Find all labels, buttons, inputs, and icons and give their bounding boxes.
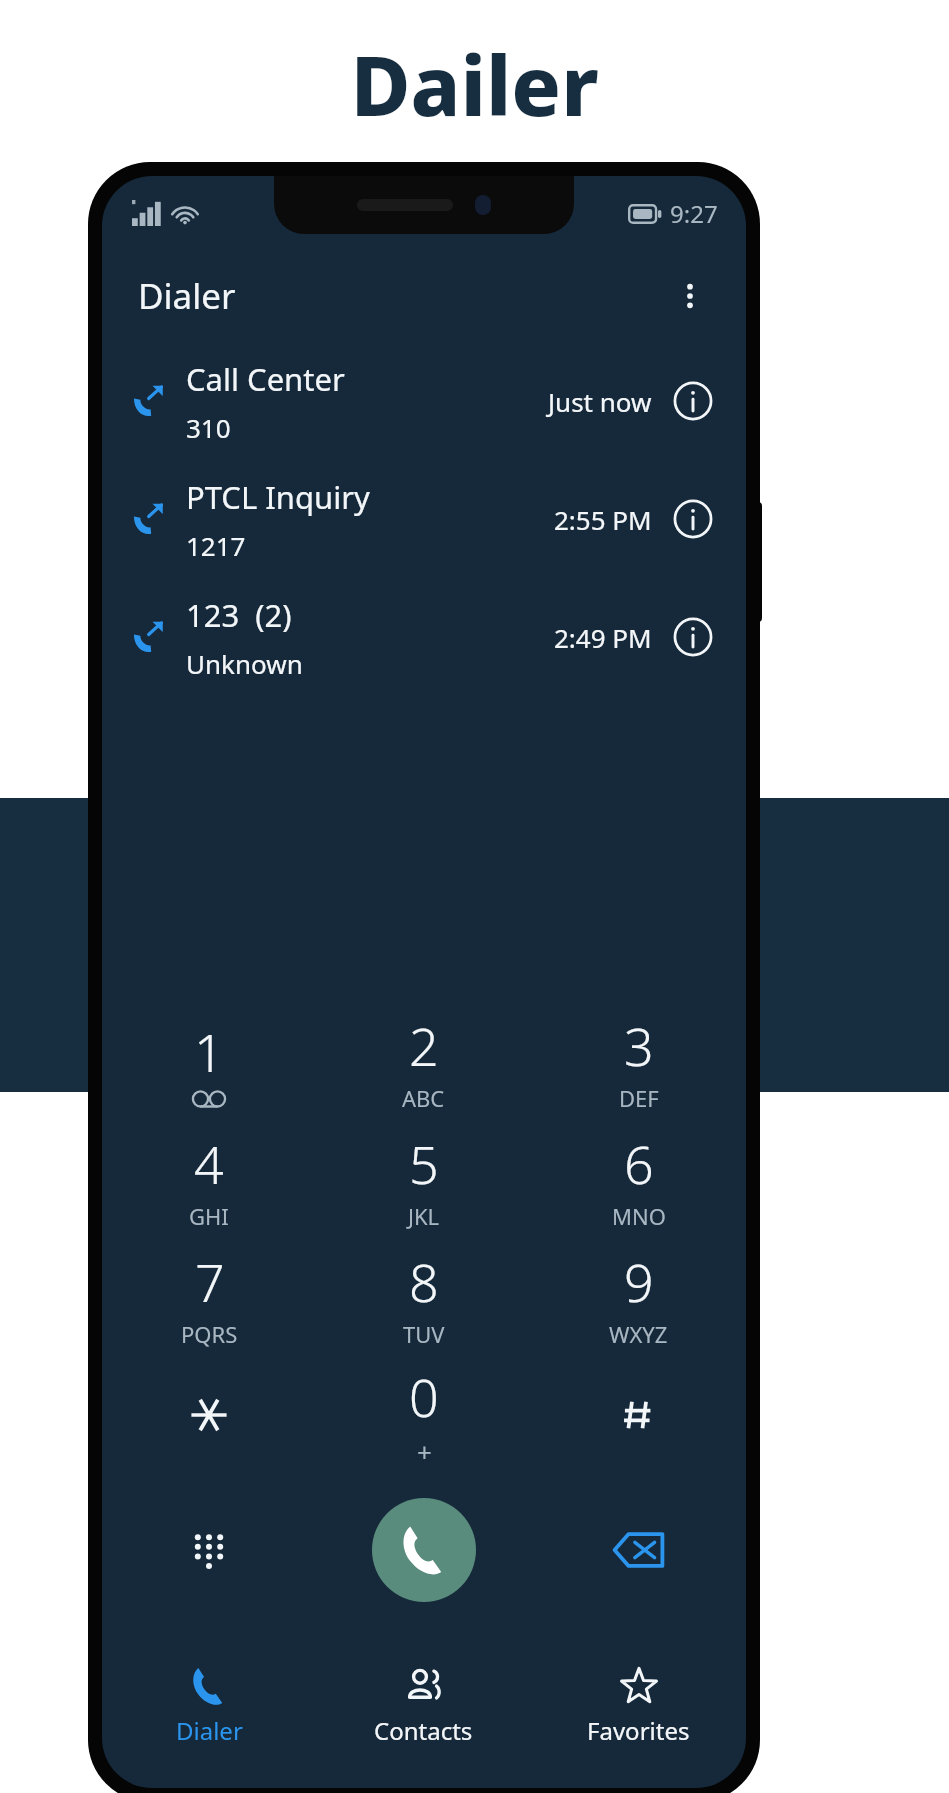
staticText: 8	[409, 1246, 439, 1317]
staticText: 123 (2)	[186, 594, 292, 636]
staticText: 310	[186, 410, 231, 445]
staticText: Just now	[548, 384, 652, 419]
staticText: 0	[409, 1361, 439, 1432]
staticText: 2	[409, 1010, 439, 1081]
button[interactable]: 123 (2)	[102, 578, 746, 696]
button[interactable]: Call details	[670, 496, 716, 542]
staticText: 6	[624, 1128, 654, 1199]
staticText: DEF	[619, 1083, 659, 1113]
staticText: 5	[409, 1128, 439, 1199]
staticText: 7	[195, 1246, 225, 1317]
button[interactable]: 0	[316, 1356, 531, 1474]
staticText: 9:27	[670, 197, 718, 230]
button[interactable]: 4	[102, 1120, 316, 1238]
button[interactable]: Backspace	[531, 1490, 746, 1610]
staticText: Dialer	[138, 272, 236, 320]
button[interactable]: Keypad	[102, 1490, 316, 1610]
staticText: 1217	[186, 528, 246, 563]
button[interactable]: Contacts	[316, 1650, 531, 1762]
button[interactable]	[102, 1356, 316, 1474]
button[interactable]: 6	[531, 1120, 746, 1238]
button[interactable]: Dialer	[102, 1650, 316, 1762]
staticText: WXYZ	[609, 1319, 668, 1349]
button[interactable]: Call details	[670, 378, 716, 424]
button[interactable]: 7	[102, 1238, 316, 1356]
button[interactable]: Call details	[670, 614, 716, 660]
staticText: +	[417, 1434, 432, 1469]
button[interactable]: 2	[316, 1002, 531, 1120]
button[interactable]: 3	[531, 1002, 746, 1120]
button[interactable]: Call	[372, 1498, 476, 1602]
staticText: 3	[624, 1010, 654, 1081]
button[interactable]: More options	[664, 270, 716, 322]
staticText: MNO	[612, 1201, 666, 1231]
staticText: 2:55 PM	[554, 502, 652, 537]
staticText: PQRS	[181, 1319, 238, 1349]
staticText: ABC	[402, 1083, 445, 1113]
staticText: 4	[194, 1128, 224, 1199]
staticText: 1	[194, 1016, 224, 1087]
staticText: Dailer	[350, 28, 599, 138]
button[interactable]: 1	[102, 1002, 316, 1120]
staticText: 9	[624, 1246, 654, 1317]
staticText: Contacts	[374, 1714, 473, 1747]
button[interactable]: Call Center	[102, 342, 746, 460]
staticText: Call Center	[186, 358, 345, 400]
button[interactable]: 9	[531, 1238, 746, 1356]
staticText: TUV	[403, 1319, 445, 1349]
staticText: JKL	[408, 1201, 440, 1231]
button[interactable]	[531, 1356, 746, 1474]
staticText: Dialer	[176, 1714, 243, 1747]
staticText: 2:49 PM	[554, 620, 652, 655]
staticText: Favorites	[587, 1714, 690, 1747]
button[interactable]: Favorites	[531, 1650, 746, 1762]
staticText: PTCL Inquiry	[186, 476, 370, 518]
button[interactable]: 8	[316, 1238, 531, 1356]
staticText: GHI	[189, 1201, 229, 1231]
staticText: Unknown	[186, 646, 303, 681]
button[interactable]: PTCL Inquiry	[102, 460, 746, 578]
button[interactable]: 5	[316, 1120, 531, 1238]
